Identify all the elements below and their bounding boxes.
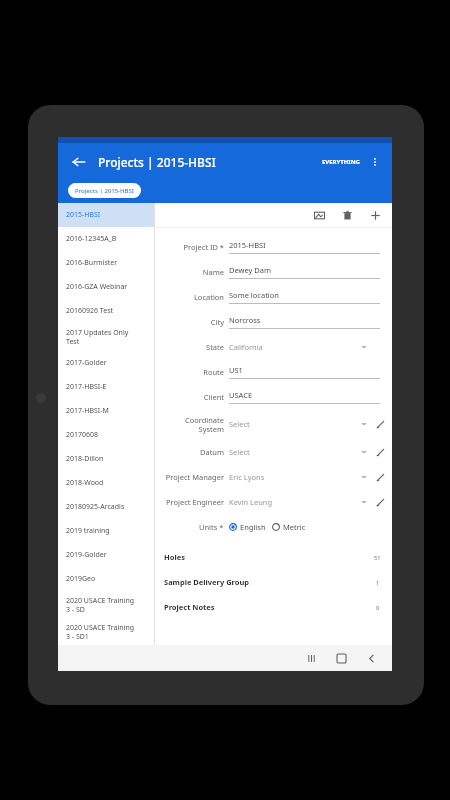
button[interactable]: Delete bbox=[336, 204, 358, 226]
button[interactable]: Location bbox=[155, 284, 392, 309]
button[interactable]: 2017-HBSI-M bbox=[58, 399, 154, 423]
staticText: 2018-Wood bbox=[66, 478, 104, 488]
button[interactable]: 2017-HBSI-E bbox=[58, 375, 154, 399]
staticText: Route bbox=[203, 367, 224, 377]
staticText: 51 bbox=[374, 554, 381, 561]
button[interactable]: 2018-Dillon bbox=[58, 447, 154, 471]
button[interactable]: Edit bbox=[372, 444, 388, 460]
staticText: Holes bbox=[164, 552, 372, 562]
staticText: 2017-Golder bbox=[66, 358, 107, 368]
button[interactable]: Add bbox=[364, 204, 386, 226]
button[interactable]: Back bbox=[66, 149, 92, 175]
button[interactable]: 2020 USACE Training 3 - SD1 bbox=[58, 619, 154, 645]
button[interactable]: Holes bbox=[158, 547, 389, 567]
button[interactable]: 2017-Golder bbox=[58, 351, 154, 375]
button[interactable]: Client bbox=[155, 384, 392, 409]
button[interactable]: Project ID * bbox=[155, 234, 392, 259]
staticText: Location bbox=[193, 292, 224, 302]
button[interactable]: Project Manager bbox=[155, 464, 392, 489]
button[interactable]: Route bbox=[155, 359, 392, 384]
staticText: 2017 Updates Only Test bbox=[66, 328, 129, 346]
button[interactable]: English bbox=[229, 522, 266, 532]
button[interactable]: Edit bbox=[372, 494, 388, 510]
staticText: Project ID * bbox=[183, 242, 224, 252]
button[interactable]: 2019-Golder bbox=[58, 543, 154, 567]
staticText: Units * bbox=[199, 522, 224, 532]
staticText: 2019 training bbox=[66, 526, 110, 536]
staticText: Eric Lyons bbox=[229, 472, 360, 482]
staticText: Metric bbox=[283, 522, 306, 532]
button[interactable]: EVERYTHING bbox=[318, 158, 364, 166]
staticText: 20160926 Test bbox=[66, 306, 114, 316]
button[interactable]: 2020 USACE Training 3 - SD bbox=[58, 591, 154, 619]
staticText: Norcross bbox=[229, 315, 384, 325]
staticText: Projects | 2015-HBSI bbox=[75, 187, 134, 195]
staticText: City bbox=[210, 317, 224, 327]
staticText: 2016-Burmister bbox=[66, 258, 118, 268]
button[interactable]: Edit bbox=[372, 469, 388, 485]
staticText: Name bbox=[202, 267, 224, 277]
button[interactable]: 2016-12345A_B bbox=[58, 227, 154, 251]
button[interactable]: Recents bbox=[300, 647, 322, 669]
button[interactable]: 2017 Updates Only Test bbox=[58, 323, 154, 351]
staticText: Project Engineer bbox=[166, 497, 224, 507]
staticText: US1 bbox=[229, 365, 384, 375]
staticText: 2015-HBSI bbox=[229, 240, 384, 250]
staticText: Client bbox=[203, 392, 224, 402]
button[interactable]: More options bbox=[364, 151, 386, 173]
staticText: Select bbox=[229, 447, 360, 457]
staticText: 20170608 bbox=[66, 430, 99, 440]
button[interactable]: Edit bbox=[372, 416, 388, 432]
button[interactable]: 20170608 bbox=[58, 423, 154, 447]
staticText: USACE bbox=[229, 390, 384, 400]
staticText: California bbox=[229, 342, 360, 352]
button[interactable]: Datum bbox=[155, 439, 392, 464]
button[interactable]: Projects | 2015-HBSI bbox=[68, 183, 141, 198]
staticText: 2017-HBSI-E bbox=[66, 382, 107, 392]
staticText: 20180925-Arcadis bbox=[66, 502, 125, 512]
staticText: 2020 USACE Training 3 - SD1 bbox=[66, 623, 135, 641]
staticText: Coordinate System bbox=[184, 415, 224, 434]
staticText: EVERYTHING bbox=[322, 158, 360, 166]
staticText: Sample Delivery Group bbox=[164, 577, 372, 587]
button[interactable]: 2019Geo bbox=[58, 567, 154, 591]
button[interactable]: City bbox=[155, 309, 392, 334]
staticText: 2019Geo bbox=[66, 574, 96, 584]
staticText: 2015-HBSI bbox=[66, 210, 101, 220]
button[interactable]: 20160926 Test bbox=[58, 299, 154, 323]
button[interactable]: Sample Delivery Group bbox=[158, 572, 389, 592]
button[interactable]: 2016-GZA Webinar bbox=[58, 275, 154, 299]
staticText: 2019-Golder bbox=[66, 550, 107, 560]
button[interactable]: Project Notes bbox=[158, 597, 389, 617]
button[interactable]: Metric bbox=[272, 522, 306, 532]
staticText: 2020 USACE Training 3 - SD bbox=[66, 596, 135, 614]
button[interactable]: Project Engineer bbox=[155, 489, 392, 514]
button[interactable]: 20180925-Arcadis bbox=[58, 495, 154, 519]
button[interactable]: Map bbox=[308, 204, 330, 226]
staticText: English bbox=[240, 522, 266, 532]
staticText: 2016-12345A_B bbox=[66, 234, 117, 244]
staticText: 2018-Dillon bbox=[66, 454, 104, 464]
button[interactable]: State bbox=[155, 334, 392, 359]
button[interactable]: 2015-HBSI bbox=[58, 203, 154, 227]
button[interactable]: Coordinate System bbox=[155, 409, 392, 439]
staticText: 2017-HBSI-M bbox=[66, 406, 109, 416]
button[interactable]: 2016-Burmister bbox=[58, 251, 154, 275]
staticText: Project Notes bbox=[164, 602, 372, 612]
staticText: State bbox=[206, 342, 224, 352]
staticText: 0 bbox=[376, 604, 380, 611]
button[interactable]: Name bbox=[155, 259, 392, 284]
button[interactable]: 2019 training bbox=[58, 519, 154, 543]
staticText: Datum bbox=[199, 447, 224, 457]
staticText: Project Manager bbox=[165, 472, 224, 482]
button[interactable]: 2018-Wood bbox=[58, 471, 154, 495]
staticText: Dewey Dam bbox=[229, 265, 384, 275]
button[interactable]: Home bbox=[330, 647, 352, 669]
staticText: Select bbox=[229, 419, 360, 429]
staticText: Projects | 2015-HBSI bbox=[98, 154, 216, 170]
staticText: 1 bbox=[376, 579, 380, 586]
staticText: Kevin Leung bbox=[229, 497, 360, 507]
staticText: Some location bbox=[229, 290, 384, 300]
button[interactable]: Back bbox=[360, 647, 382, 669]
staticText: 2016-GZA Webinar bbox=[66, 282, 128, 292]
